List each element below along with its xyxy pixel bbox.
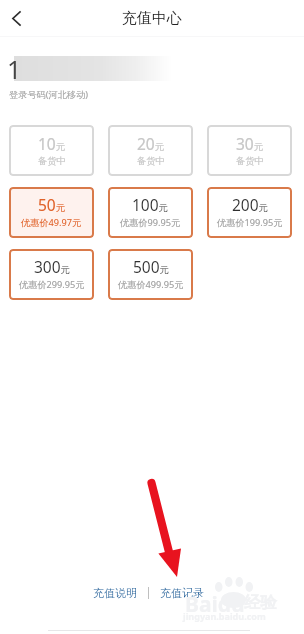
staticText: 充值记录	[160, 586, 204, 600]
staticText: 200元	[232, 194, 269, 215]
staticText: 50元	[38, 194, 66, 215]
button[interactable]: 200元	[207, 187, 292, 238]
staticText: 优惠价49.97元	[21, 216, 82, 229]
staticText: 100元	[132, 194, 169, 215]
button[interactable]: 100元	[108, 187, 193, 238]
button[interactable]: 10元	[9, 125, 94, 176]
staticText: Baidu	[185, 590, 245, 619]
staticText: 备货中	[38, 155, 66, 167]
staticText: 优惠价199.95元	[217, 216, 283, 229]
staticText: jingyan.baidu.com	[183, 610, 266, 622]
staticText: 充值说明	[93, 586, 137, 600]
staticText: 优惠价499.95元	[118, 278, 184, 291]
staticText: 优惠价99.95元	[120, 216, 181, 229]
staticText: 500元	[133, 256, 170, 277]
button[interactable]: 50元	[9, 187, 94, 238]
staticText: 10元	[38, 133, 66, 154]
staticText: 300元	[34, 256, 71, 277]
staticText: 1	[7, 52, 22, 86]
staticText: 充值中心	[122, 9, 182, 28]
staticText: 登录号码(河北移动)	[9, 88, 89, 101]
button[interactable]: Back	[0, 0, 33, 36]
staticText: 30元	[236, 133, 264, 154]
button[interactable]: 充值说明	[82, 581, 148, 605]
button[interactable]: 20元	[108, 125, 193, 176]
button[interactable]: 500元	[108, 249, 193, 300]
staticText: 20元	[137, 133, 165, 154]
button[interactable]: 充值记录	[149, 581, 215, 605]
staticText: 经验	[244, 592, 277, 613]
staticText: 备货中	[236, 155, 264, 167]
staticText: 优惠价299.95元	[19, 278, 85, 291]
button[interactable]: 300元	[9, 249, 94, 300]
staticText: 备货中	[137, 155, 165, 167]
button[interactable]: 30元	[207, 125, 292, 176]
